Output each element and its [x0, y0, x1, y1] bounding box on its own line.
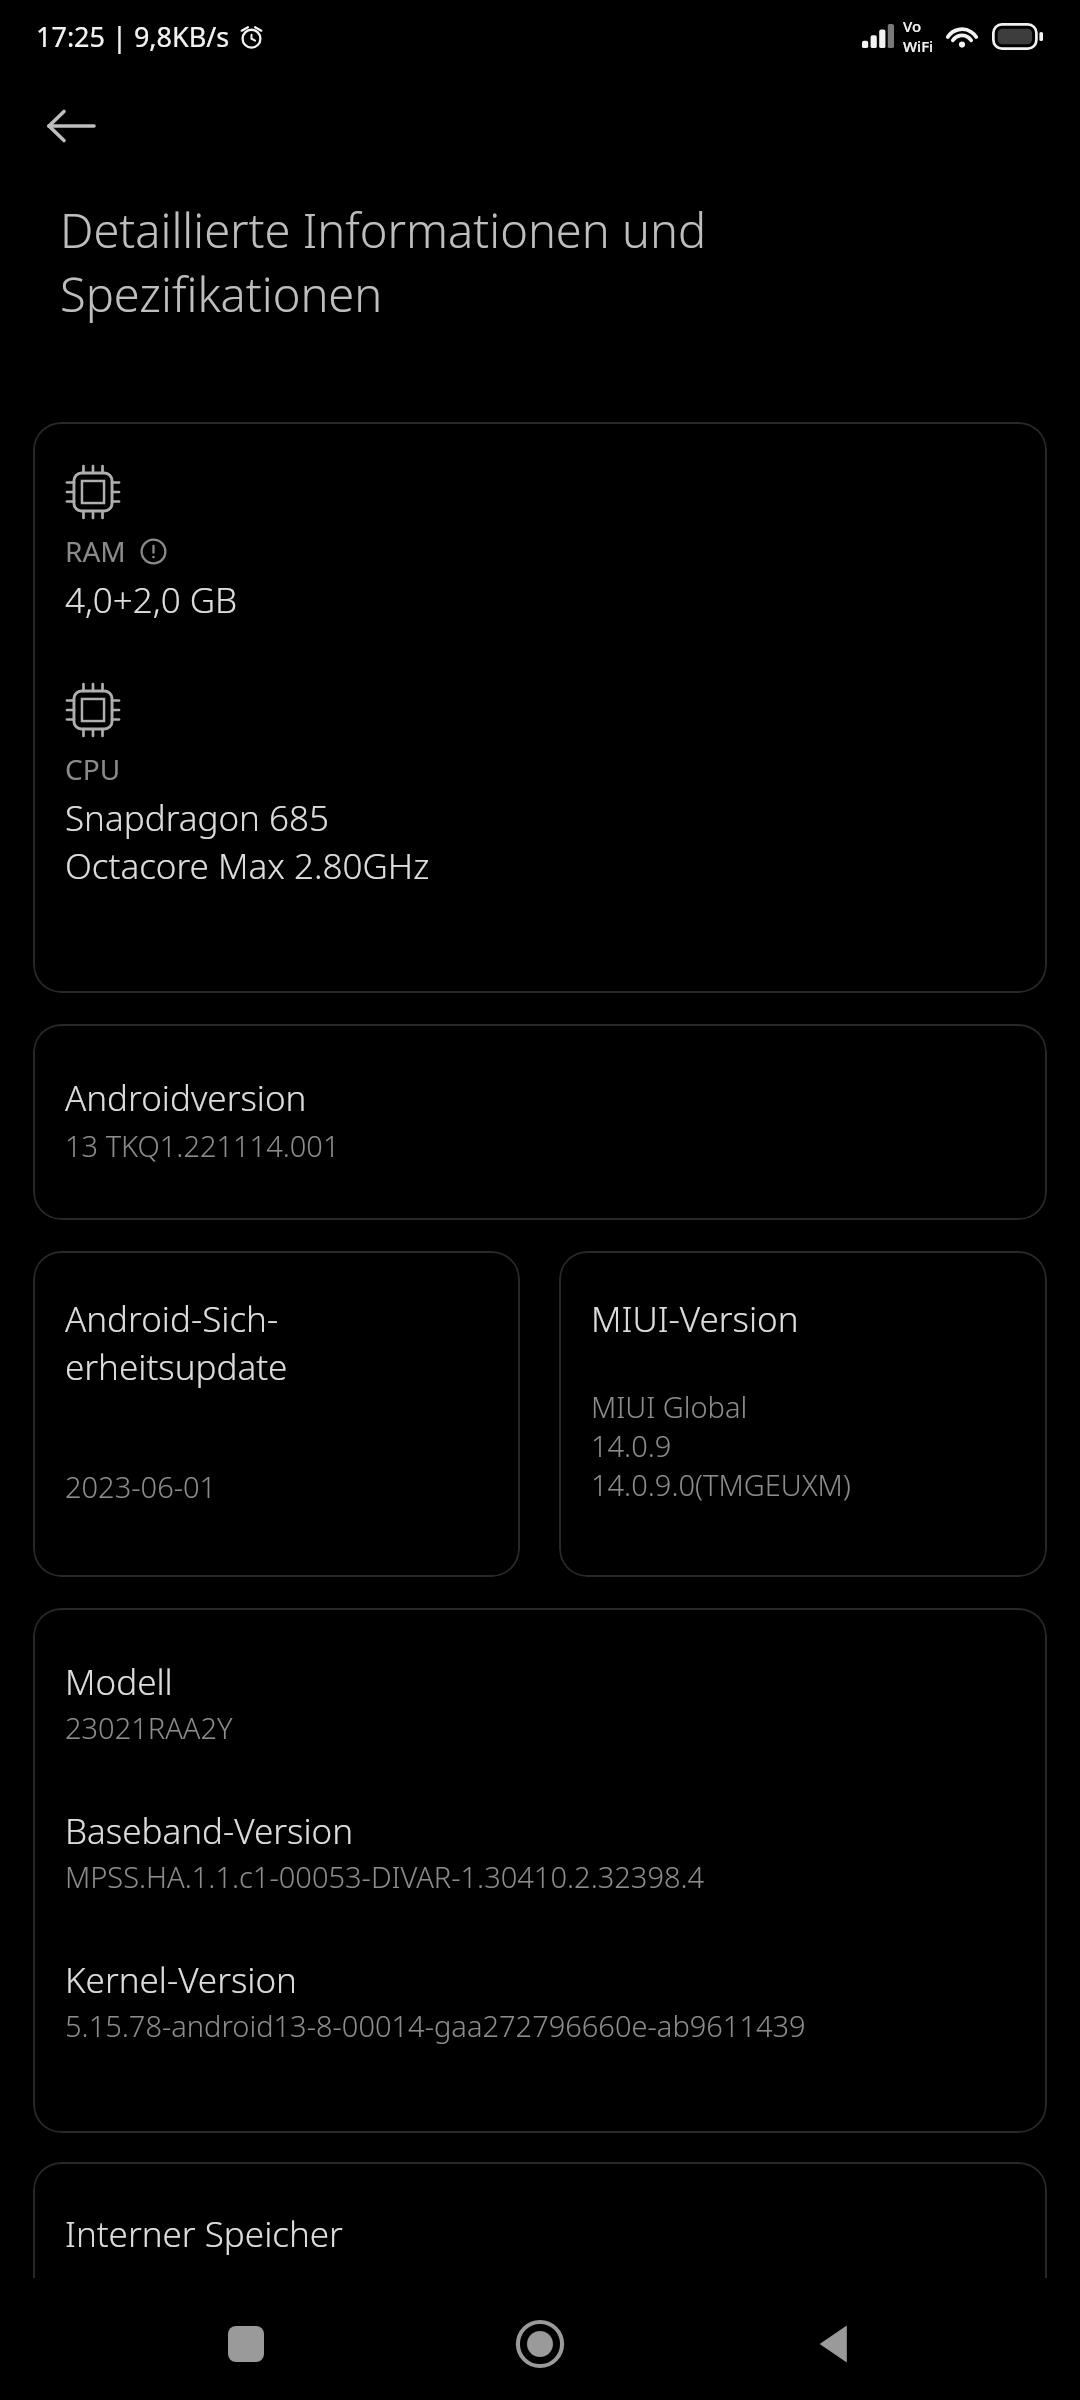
- button[interactable]: MIUI-Version: [559, 1251, 1047, 1577]
- button[interactable]: Android-Sich-: [33, 1251, 520, 1577]
- button[interactable]: Interner Speicher: [33, 2162, 1047, 2362]
- staticText: 4,0+2,0 GB: [65, 576, 238, 624]
- button[interactable]: Back: [786, 2296, 882, 2392]
- staticText: Vo: [903, 16, 922, 36]
- staticText: Android-Sich-: [65, 1295, 279, 1343]
- staticText: 13 TKQ1.221114.001: [65, 1126, 340, 1165]
- staticText: WiFi: [903, 36, 934, 56]
- staticText: 14.0.9: [591, 1426, 672, 1465]
- button[interactable]: Androidversion: [33, 1024, 1047, 1220]
- staticText: Detaillierte Informationen und: [60, 198, 707, 262]
- staticText: 5.15.78-android13-8-00014-gaa272796660e-…: [65, 2006, 806, 2045]
- staticText: 23021RAA2Y: [65, 1708, 233, 1747]
- staticText: Baseband-Version: [65, 1807, 354, 1855]
- staticText: CPU: [65, 750, 121, 788]
- staticText: 14.0.9.0(TMGEUXM): [591, 1465, 851, 1504]
- button[interactable]: Home: [492, 2296, 588, 2392]
- button[interactable]: Recent apps: [198, 2296, 294, 2392]
- staticText: erheitsupdate: [65, 1343, 288, 1391]
- button[interactable]: Modell: [33, 1608, 1047, 2133]
- staticText: 2023-06-01: [65, 1467, 217, 1506]
- button[interactable]: Back: [32, 87, 110, 165]
- staticText: Modell: [65, 1658, 173, 1706]
- button[interactable]: RAM: [33, 422, 1047, 993]
- staticText: Interner Speicher: [65, 2210, 343, 2258]
- staticText: MIUI-Version: [591, 1295, 799, 1343]
- staticText: Kernel-Version: [65, 1956, 297, 2004]
- staticText: Spezifikationen: [60, 262, 383, 326]
- staticText: 17:25 | 9,8KB/s: [36, 18, 230, 55]
- staticText: Octacore Max 2.80GHz: [65, 842, 430, 890]
- staticText: MIUI Global: [591, 1387, 748, 1426]
- staticText: Snapdragon 685: [65, 794, 329, 842]
- staticText: MPSS.HA.1.1.c1-00053-DIVAR-1.30410.2.323…: [65, 1857, 705, 1896]
- staticText: Androidversion: [65, 1074, 307, 1122]
- staticText: RAM: [65, 532, 126, 570]
